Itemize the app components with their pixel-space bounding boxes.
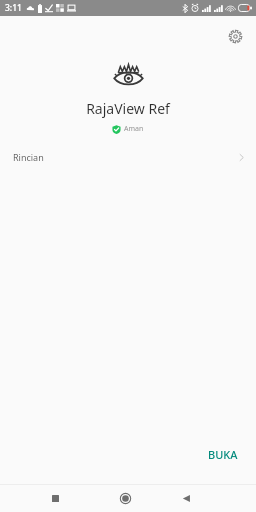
staticText: 3:11 [5, 2, 22, 14]
button[interactable]: Back [173, 485, 199, 511]
button[interactable]: BUKA [198, 441, 248, 468]
staticText: BUKA [208, 447, 238, 462]
button[interactable]: Home [112, 485, 138, 511]
button[interactable]: Recent apps [42, 485, 68, 511]
button[interactable]: Settings [222, 23, 248, 49]
staticText: RajaView Ref [86, 99, 170, 118]
button[interactable]: Rincian [0, 145, 256, 169]
staticText: Rincian [13, 151, 44, 163]
staticText: Aman [124, 124, 144, 134]
